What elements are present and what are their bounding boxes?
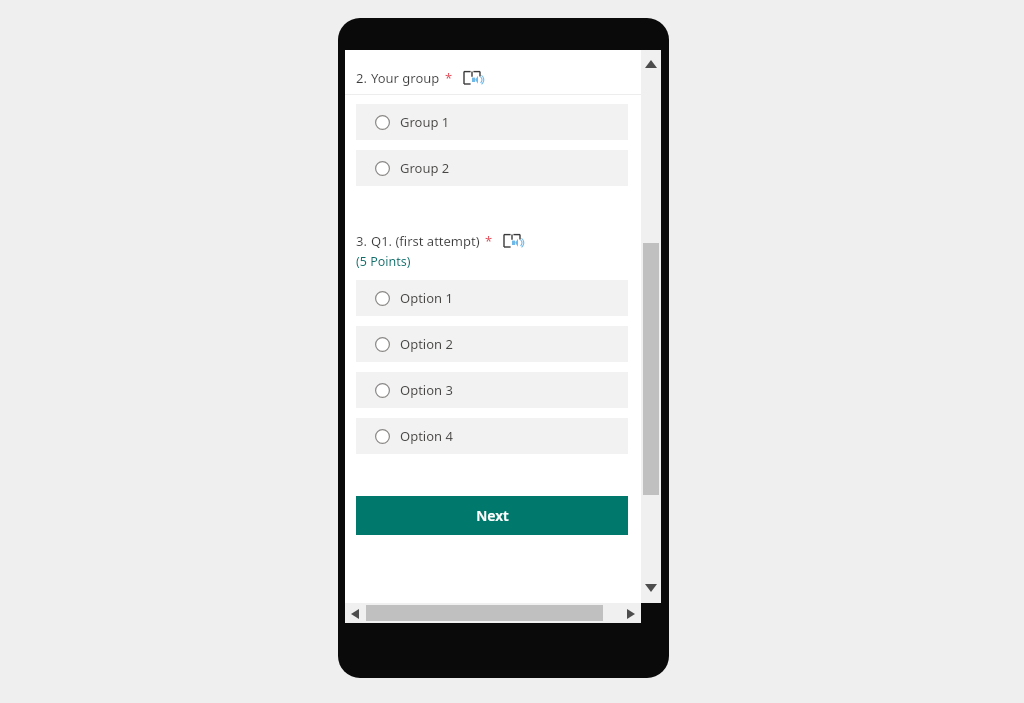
staticText: Next (476, 506, 509, 525)
staticText: Option 4 (400, 427, 453, 445)
staticText: Your group (371, 69, 440, 87)
button[interactable]: Read aloud (462, 68, 482, 88)
staticText: * (485, 232, 493, 250)
staticText: 2. (356, 69, 367, 87)
staticText: * (445, 69, 453, 87)
button[interactable]: Option 2 (356, 326, 628, 362)
button[interactable]: Group 2 (356, 150, 628, 186)
staticText: Option 2 (400, 335, 453, 353)
staticText: Group 1 (400, 113, 450, 131)
staticText: Q1. (first attempt) (371, 232, 480, 250)
staticText: Option 3 (400, 381, 453, 399)
button[interactable]: Vertical scrollbar (641, 50, 661, 603)
button[interactable]: Group 1 (356, 104, 628, 140)
button[interactable]: Horizontal scrollbar (345, 603, 641, 623)
button[interactable]: Option 3 (356, 372, 628, 408)
button[interactable]: Next (356, 496, 628, 535)
button[interactable]: Read aloud (502, 231, 522, 251)
button[interactable]: Option 1 (356, 280, 628, 316)
staticText: Group 2 (400, 159, 450, 177)
staticText: 3. (356, 232, 367, 250)
button[interactable]: Option 4 (356, 418, 628, 454)
staticText: Option 1 (400, 289, 453, 307)
staticText: (5 Points) (356, 253, 411, 270)
